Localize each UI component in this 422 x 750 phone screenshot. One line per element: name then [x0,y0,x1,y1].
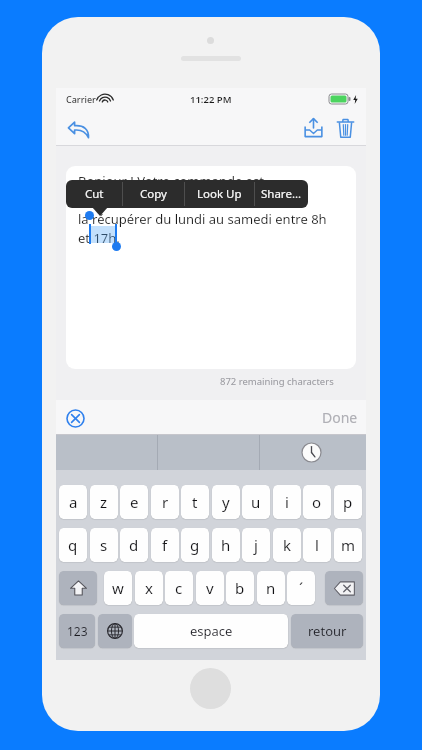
staticText: Bonjour ! Votre commande est disponible … [78,172,348,247]
staticText: c [175,578,183,598]
button[interactable]: Done [322,408,358,427]
button[interactable]: f [151,528,179,562]
staticText: f [162,535,168,555]
staticText: p [343,492,353,512]
button[interactable]: Backspace [325,571,363,605]
button[interactable]: l [303,528,331,562]
staticText: ´ [299,578,304,598]
staticText: Copy [140,186,167,202]
button[interactable]: Copy [122,180,184,208]
button[interactable]: Shift [59,571,97,605]
staticText: x [145,578,153,598]
staticText: n [266,578,276,598]
staticText: Done [322,408,358,427]
button[interactable]: d [120,528,148,562]
staticText: espace [190,622,233,640]
staticText: w [112,578,124,598]
button[interactable]: espace [134,614,288,648]
button[interactable]: j [242,528,270,562]
staticText: d [129,535,139,555]
button[interactable]: z [90,485,118,519]
button[interactable]: k [273,528,301,562]
button[interactable]: Cut [66,180,122,208]
staticText: j [254,535,258,555]
button[interactable]: m [334,528,362,562]
staticText: i [285,492,289,512]
button[interactable]: Delete [330,113,360,143]
button[interactable]: s [90,528,118,562]
staticText: a [69,492,78,512]
button[interactable]: Next keyboard [98,614,132,648]
staticText: t [192,492,198,512]
staticText: retour [308,622,347,640]
button[interactable]: a [59,485,87,519]
button[interactable]: c [165,571,193,605]
button[interactable]: t [181,485,209,519]
staticText: h [221,535,231,555]
button[interactable]: n [257,571,285,605]
staticText: Carrier [66,93,96,105]
staticText: o [312,492,322,512]
staticText: 872 remaining characters [220,375,334,388]
button[interactable]: v [196,571,224,605]
staticText: 11:22 PM [190,93,232,106]
button[interactable]: p [334,485,362,519]
staticText: v [206,578,214,598]
button[interactable]: Look Up [184,180,254,208]
button[interactable]: Recent [302,443,321,462]
button[interactable]: y [212,485,240,519]
staticText: k [283,535,292,555]
button[interactable]: i [273,485,301,519]
button[interactable]: e [120,485,148,519]
staticText: b [235,578,245,598]
staticText: e [130,492,139,512]
staticText: g [190,535,200,555]
button[interactable]: b [226,571,254,605]
button[interactable]: u [242,485,270,519]
button[interactable]: ´ [287,571,315,605]
staticText: Share... [261,186,302,202]
staticText: l [315,535,319,555]
button[interactable]: retour [291,614,363,648]
staticText: z [100,492,108,512]
button[interactable]: r [151,485,179,519]
button[interactable]: h [212,528,240,562]
button[interactable]: Share... [254,180,308,208]
button[interactable]: o [303,485,331,519]
staticText: u [251,492,261,512]
button[interactable]: 123 [59,614,95,648]
staticText: s [100,535,108,555]
button[interactable]: Share [298,113,328,143]
staticText: q [68,535,78,555]
button[interactable]: Close [62,405,88,431]
staticText: m [341,535,356,555]
staticText: r [162,492,169,512]
button[interactable]: Reply [64,116,94,142]
staticText: y [222,492,230,512]
button[interactable]: g [181,528,209,562]
button[interactable]: x [135,571,163,605]
staticText: 123 [67,623,88,639]
staticText: Cut [85,186,104,202]
button[interactable]: q [59,528,87,562]
button[interactable]: w [104,571,132,605]
staticText: Look Up [197,186,242,202]
